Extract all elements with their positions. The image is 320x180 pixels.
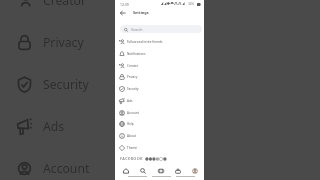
- staticText: 34%: [188, 2, 195, 6]
- button[interactable]: Security: [119, 83, 199, 95]
- staticText: Account: [43, 160, 90, 177]
- staticText: Help: [127, 122, 134, 126]
- button[interactable]: Search: [134, 165, 151, 176]
- button[interactable]: About: [119, 130, 199, 142]
- button[interactable]: Privacy: [119, 71, 199, 83]
- button[interactable]: Account: [119, 107, 199, 119]
- staticText: Security: [43, 76, 89, 93]
- staticText: Security: [127, 87, 139, 91]
- button[interactable]: Marketplace: [169, 165, 186, 176]
- staticText: Account: [127, 111, 139, 115]
- button[interactable]: Ads: [119, 95, 199, 107]
- button[interactable]: Creator: [17, 0, 105, 13]
- staticText: About: [127, 134, 136, 138]
- button[interactable]: Video: [152, 165, 169, 176]
- staticText: Settings: [133, 10, 149, 15]
- staticText: Notifications: [127, 52, 146, 56]
- staticText: FACEBOOK: [120, 156, 143, 161]
- button[interactable]: Search: [120, 25, 202, 33]
- staticText: Ads: [43, 118, 65, 135]
- button[interactable]: Ads: [17, 113, 105, 139]
- button[interactable]: Profile: [186, 165, 203, 176]
- button[interactable]: Notifications: [119, 48, 199, 60]
- button[interactable]: Home: [117, 165, 134, 176]
- staticText: Ads: [127, 99, 133, 103]
- staticText: Theme: [127, 146, 138, 150]
- staticText: Privacy: [127, 75, 138, 79]
- staticText: Search: [131, 27, 143, 32]
- staticText: Follow and invite friends: [127, 40, 163, 44]
- staticText: Creator: [127, 64, 138, 68]
- button[interactable]: Privacy: [17, 29, 105, 55]
- button[interactable]: Security: [17, 71, 105, 97]
- button[interactable]: Account: [17, 155, 105, 180]
- staticText: 12:39: [120, 2, 129, 7]
- button[interactable]: Follow and invite friends: [119, 36, 199, 48]
- button[interactable]: Help: [119, 118, 199, 130]
- button[interactable]: Theme: [119, 142, 199, 154]
- staticText: Creator: [43, 0, 87, 9]
- staticText: Privacy: [43, 34, 84, 51]
- button[interactable]: Creator: [119, 60, 199, 72]
- button[interactable]: Back: [118, 8, 128, 18]
